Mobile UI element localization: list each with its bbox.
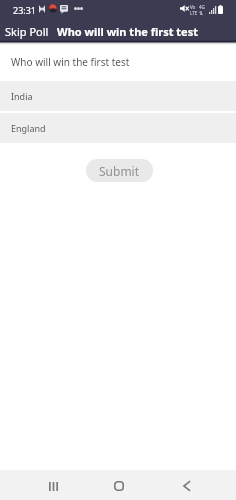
staticText: ⇅ xyxy=(199,10,204,16)
staticText: Who will win the first test xyxy=(11,55,130,69)
button[interactable]: Home xyxy=(97,470,141,500)
staticText: Submit xyxy=(99,163,140,179)
button[interactable]: Recent apps xyxy=(31,470,75,500)
staticText: Skip Poll xyxy=(5,24,49,39)
button[interactable]: Submit xyxy=(86,159,153,182)
staticText: India xyxy=(11,90,33,102)
staticText: Vo xyxy=(190,4,196,10)
staticText: Who will win the first test xyxy=(57,24,198,39)
button[interactable]: England xyxy=(0,113,236,143)
staticText: 23:31 xyxy=(13,4,37,16)
staticText: 4G xyxy=(199,4,205,10)
button[interactable]: India xyxy=(0,81,236,111)
staticText: England xyxy=(11,122,46,134)
staticText: LTE xyxy=(190,10,198,16)
button[interactable]: Back xyxy=(164,470,208,500)
button[interactable]: Skip Poll xyxy=(4,24,50,39)
